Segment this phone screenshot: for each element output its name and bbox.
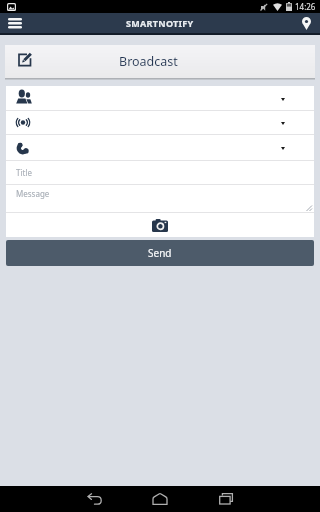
button[interactable] xyxy=(133,486,187,512)
staticText: SMARTNOTIFY xyxy=(126,17,194,29)
button[interactable] xyxy=(6,86,314,110)
button[interactable] xyxy=(0,13,30,35)
staticText: Send xyxy=(148,246,172,260)
button[interactable]: Message xyxy=(6,185,314,212)
staticText: Title xyxy=(16,167,32,178)
staticText: Message xyxy=(16,188,50,199)
button[interactable]: Title xyxy=(6,161,314,184)
button[interactable] xyxy=(6,213,314,237)
button[interactable] xyxy=(6,135,314,160)
button[interactable] xyxy=(67,486,121,512)
button[interactable] xyxy=(292,13,320,35)
button[interactable] xyxy=(199,486,253,512)
staticText: Broadcast xyxy=(119,53,178,70)
button[interactable] xyxy=(6,111,314,134)
staticText: 14:26 xyxy=(295,1,316,12)
button[interactable]: Send xyxy=(6,240,314,266)
button[interactable] xyxy=(5,45,45,78)
